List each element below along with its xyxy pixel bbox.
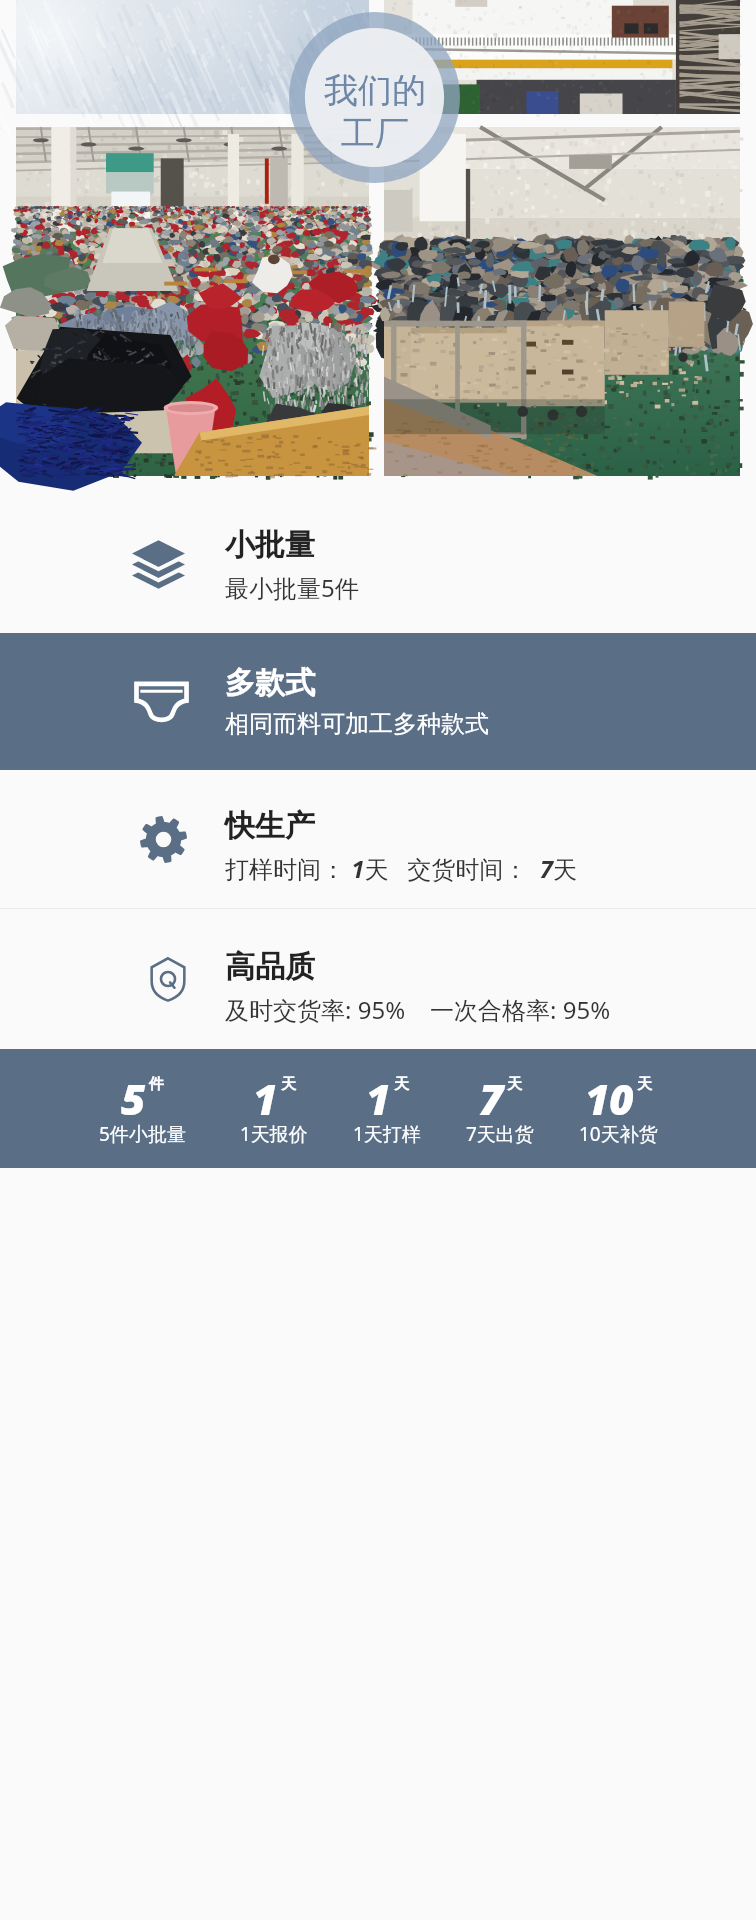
staticText: 7 (479, 1070, 504, 1127)
staticText: 我们的 (324, 69, 426, 112)
staticText: 小批量 (225, 526, 315, 564)
staticText: 快生产 (225, 807, 315, 845)
staticText: 1天报价 (240, 1121, 308, 1147)
staticText: 高品质 (225, 948, 315, 986)
staticText: 天 (507, 1075, 522, 1094)
button[interactable]: 1 (240, 1070, 308, 1153)
staticText: 工厂 (341, 112, 409, 155)
staticText: 天 (281, 1075, 296, 1094)
staticText: 10天补货 (579, 1121, 658, 1147)
staticText: 天 (637, 1075, 652, 1094)
staticText: 相同而料可加工多种款式 (225, 709, 489, 739)
staticText: 5 (121, 1070, 146, 1127)
button[interactable]: Many styles (0, 633, 756, 770)
button[interactable]: Fast production (0, 770, 756, 908)
staticText: 多款式 (225, 664, 315, 702)
staticText: 10 (585, 1070, 634, 1127)
staticText: 打样时间： 1天 交货时间： 7天 (225, 852, 577, 885)
staticText: 5件小批量 (99, 1121, 186, 1147)
button[interactable]: 10 (579, 1070, 658, 1153)
staticText: 最小批量5件 (225, 571, 359, 604)
staticText: 及时交货率: 95% 一次合格率: 95% (225, 993, 611, 1026)
button[interactable]: 7 (466, 1070, 534, 1153)
staticText: 1天打样 (353, 1121, 421, 1147)
other: Fast production (140, 816, 187, 863)
other: Small batch (132, 540, 185, 589)
button[interactable]: High quality (0, 909, 756, 1049)
staticText: 1 (366, 1070, 391, 1127)
button[interactable]: Small batch (0, 496, 756, 633)
other: High quality (149, 956, 187, 1002)
button[interactable]: 5 (99, 1070, 186, 1153)
staticText: 件 (149, 1075, 164, 1094)
staticText: 7天出货 (466, 1121, 534, 1147)
staticText: 1 (253, 1070, 278, 1127)
button[interactable]: 1 (353, 1070, 421, 1153)
staticText: 天 (394, 1075, 409, 1094)
other: Many styles (134, 681, 189, 722)
